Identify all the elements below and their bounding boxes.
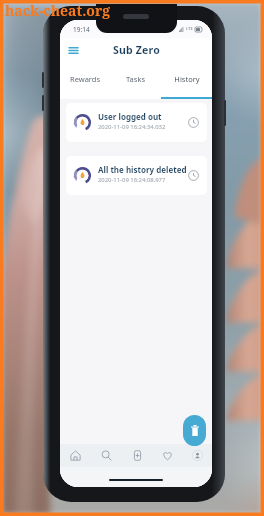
staticText: 2020-11-09 16:24:34.032	[98, 123, 166, 131]
staticText: Tasks	[126, 74, 145, 84]
staticText: History	[174, 74, 200, 84]
staticText: 19:14	[73, 25, 90, 34]
staticText: Sub Zero	[113, 43, 160, 57]
staticText: Rewards	[70, 74, 100, 84]
button[interactable]: Profile	[182, 444, 212, 467]
button[interactable]: Tasks	[110, 62, 161, 99]
button[interactable]: History	[161, 62, 212, 99]
staticText: 2020-11-09 16:24:08.977	[98, 176, 166, 184]
button[interactable]: Rewards	[60, 62, 110, 99]
button[interactable]: Search	[91, 444, 122, 467]
staticText: All the history deleted	[98, 164, 187, 175]
button[interactable]: Menu	[65, 42, 81, 58]
button[interactable]: User logged out	[66, 103, 207, 142]
button[interactable]: Home	[60, 444, 91, 467]
staticText: hack-cheat.org	[5, 1, 111, 20]
button[interactable]: Delete history	[183, 415, 206, 446]
staticText: User logged out	[98, 111, 162, 122]
button[interactable]: Add	[122, 444, 152, 467]
button[interactable]: Favorites	[152, 444, 182, 467]
staticText: LTE	[186, 26, 193, 32]
button[interactable]: All the history deleted	[66, 156, 207, 195]
